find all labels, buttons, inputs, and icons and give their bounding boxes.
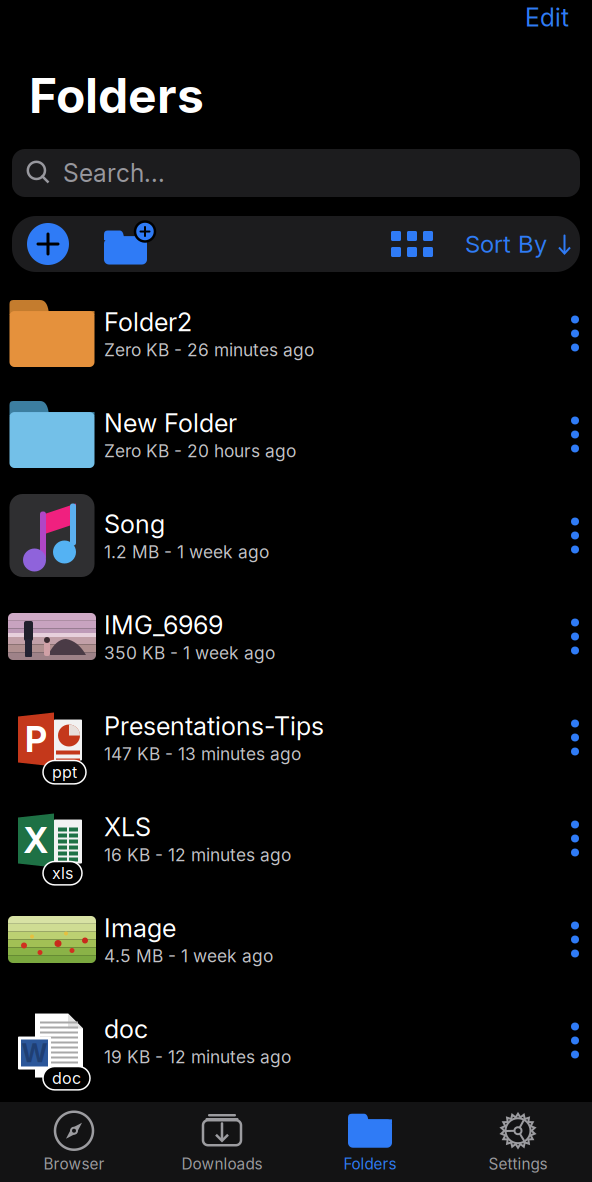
button[interactable]: Add (23, 216, 73, 272)
staticText: Sort By (465, 229, 547, 258)
button[interactable]: Folder2 (0, 283, 592, 384)
staticText: 16 KB - 12 minutes ago (104, 844, 291, 865)
staticText: W (21, 1038, 47, 1068)
staticText: ppt (52, 762, 77, 782)
staticText: Edit (525, 3, 569, 32)
button[interactable]: Image (0, 889, 592, 990)
button[interactable]: New Folder (73, 216, 155, 272)
button[interactable]: Grid view (377, 216, 447, 272)
staticText: Folder2 (104, 307, 192, 337)
button[interactable]: Edit (502, 0, 592, 40)
staticText: Folders (343, 1155, 396, 1173)
staticText: XLS (104, 812, 151, 842)
button[interactable]: X (0, 788, 592, 889)
staticText: Presentations-Tips (104, 711, 324, 741)
staticText: doc (52, 1068, 81, 1088)
button[interactable]: Search... (12, 149, 580, 197)
button[interactable]: Downloads (148, 1102, 296, 1182)
button[interactable]: Settings (444, 1102, 592, 1182)
button[interactable]: Browser (0, 1102, 148, 1182)
staticText: Folders (29, 66, 204, 125)
staticText: New Folder (104, 408, 237, 438)
staticText: P (25, 718, 47, 760)
staticText: Settings (488, 1155, 547, 1173)
button[interactable]: P (0, 687, 592, 788)
button[interactable]: New Folder (0, 384, 592, 485)
staticText: Search... (63, 158, 165, 188)
staticText: 19 KB - 12 minutes ago (104, 1046, 291, 1067)
button[interactable]: Song (0, 485, 592, 586)
staticText: 1.2 MB - 1 week ago (104, 541, 269, 562)
staticText: 4.5 MB - 1 week ago (104, 945, 273, 966)
staticText: doc (104, 1014, 148, 1044)
button[interactable]: IMG_6969 (0, 586, 592, 687)
staticText: Zero KB - 20 hours ago (104, 440, 296, 461)
staticText: X (23, 819, 48, 861)
staticText: Image (104, 913, 176, 943)
button[interactable]: Folders (296, 1102, 444, 1182)
staticText: IMG_6969 (104, 610, 223, 640)
staticText: Zero KB - 26 minutes ago (104, 339, 314, 360)
staticText: xls (52, 863, 73, 883)
staticText: 350 KB - 1 week ago (104, 642, 275, 663)
staticText: Song (104, 509, 165, 539)
button[interactable]: W (0, 990, 592, 1091)
staticText: Browser (43, 1155, 104, 1173)
staticText: 147 KB - 13 minutes ago (104, 743, 301, 764)
staticText: Downloads (181, 1155, 262, 1173)
button[interactable]: Sort By (447, 216, 580, 272)
